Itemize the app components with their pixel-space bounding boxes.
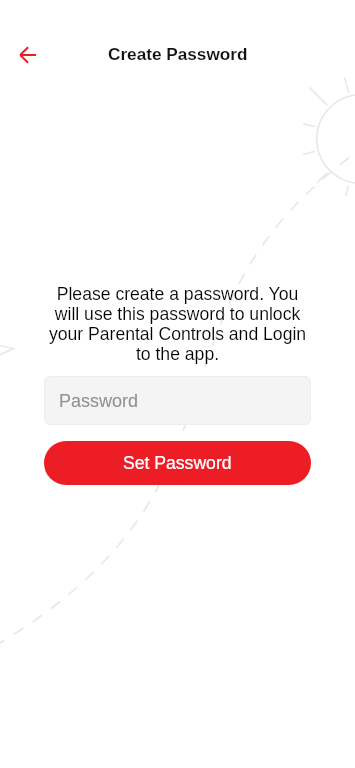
button[interactable]: Back [4,29,52,77]
staticText: Create Password [108,44,248,63]
staticText: Set Password [123,453,232,473]
staticText: Please create a password. You will use t… [0,284,355,364]
button[interactable]: Set Password [44,441,311,485]
button[interactable]: Password [44,376,311,425]
staticText: Password [59,391,139,411]
